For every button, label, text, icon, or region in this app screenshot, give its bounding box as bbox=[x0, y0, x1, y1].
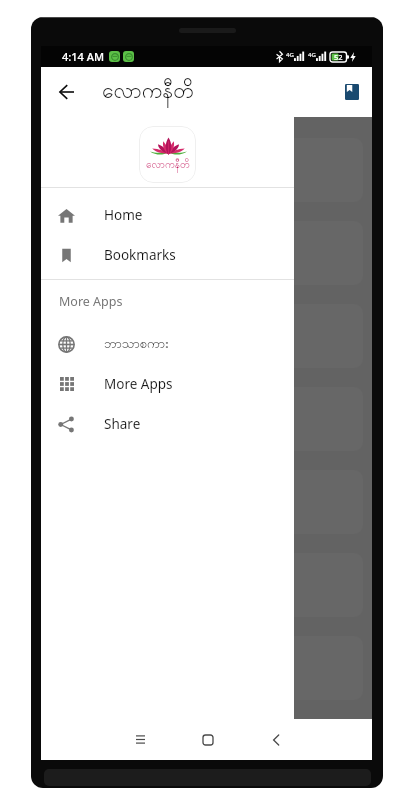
button[interactable]: ဘာသာစကား bbox=[41, 324, 294, 364]
button[interactable]: Bookmarks bbox=[41, 235, 294, 275]
button[interactable] bbox=[50, 636, 363, 700]
button[interactable]: Bookmarks bbox=[332, 69, 372, 115]
button[interactable]: Home bbox=[187, 719, 229, 760]
staticText: 52 bbox=[334, 52, 343, 62]
staticText: ဘာသာစကား bbox=[104, 335, 169, 354]
button[interactable] bbox=[50, 221, 363, 285]
button[interactable]: Back bbox=[255, 719, 297, 760]
button[interactable] bbox=[50, 470, 363, 534]
button[interactable]: Recent apps bbox=[119, 719, 161, 760]
staticText: လောကနီတိ bbox=[102, 77, 194, 108]
staticText: လောကနီတိ bbox=[146, 158, 190, 173]
button[interactable] bbox=[50, 387, 363, 451]
staticText: 4G bbox=[286, 51, 294, 59]
button[interactable]: Share bbox=[41, 404, 294, 444]
staticText: 4G bbox=[308, 51, 316, 59]
staticText: 4:14 AM bbox=[62, 49, 105, 64]
staticText: More Apps bbox=[59, 293, 123, 310]
staticText: More Apps bbox=[104, 375, 173, 393]
button[interactable] bbox=[50, 553, 363, 617]
staticText: Share bbox=[104, 415, 141, 433]
button[interactable]: Home bbox=[41, 195, 294, 235]
button[interactable]: More Apps bbox=[41, 364, 294, 404]
staticText: Bookmarks bbox=[104, 246, 176, 264]
button[interactable] bbox=[50, 138, 363, 202]
staticText: Home bbox=[104, 206, 143, 224]
button[interactable]: Back bbox=[41, 69, 91, 115]
button[interactable] bbox=[50, 304, 363, 368]
